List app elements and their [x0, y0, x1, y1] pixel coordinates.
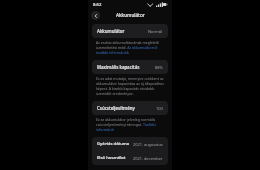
staticText: 100	[156, 106, 163, 111]
staticText: Maximális kapacitás	[97, 64, 140, 70]
staticText: Normál	[148, 29, 163, 34]
staticText: 88%	[155, 65, 163, 70]
button[interactable]: Akkumulátor	[92, 24, 168, 38]
staticText: Az eszköz akkumulátorának megfelelő üzem…	[96, 40, 164, 55]
button[interactable]: Vissza	[91, 11, 100, 20]
staticText: Ez az akkumulátor jelenleg normális csúc…	[96, 117, 164, 132]
staticText: 8:52	[93, 2, 102, 8]
button[interactable]: Első használat	[92, 151, 168, 165]
button[interactable]: Maximális kapacitás	[92, 60, 168, 74]
staticText: Akkumulátor	[97, 28, 125, 34]
staticText: Ez az adat mutatja, mennyire csökkent az…	[96, 76, 164, 96]
button[interactable]: Gyártás dátuma	[92, 137, 168, 151]
staticText: Csúcsteljesítmény	[97, 105, 135, 111]
staticText: 2021. december	[133, 156, 163, 161]
button[interactable]: Csúcsteljesítmény	[92, 101, 168, 115]
staticText: Akkumulátor	[116, 12, 145, 18]
staticText: 2021. augusztus	[133, 142, 163, 147]
staticText: Gyártás dátuma	[97, 141, 130, 147]
staticText: Első használat	[97, 155, 126, 161]
